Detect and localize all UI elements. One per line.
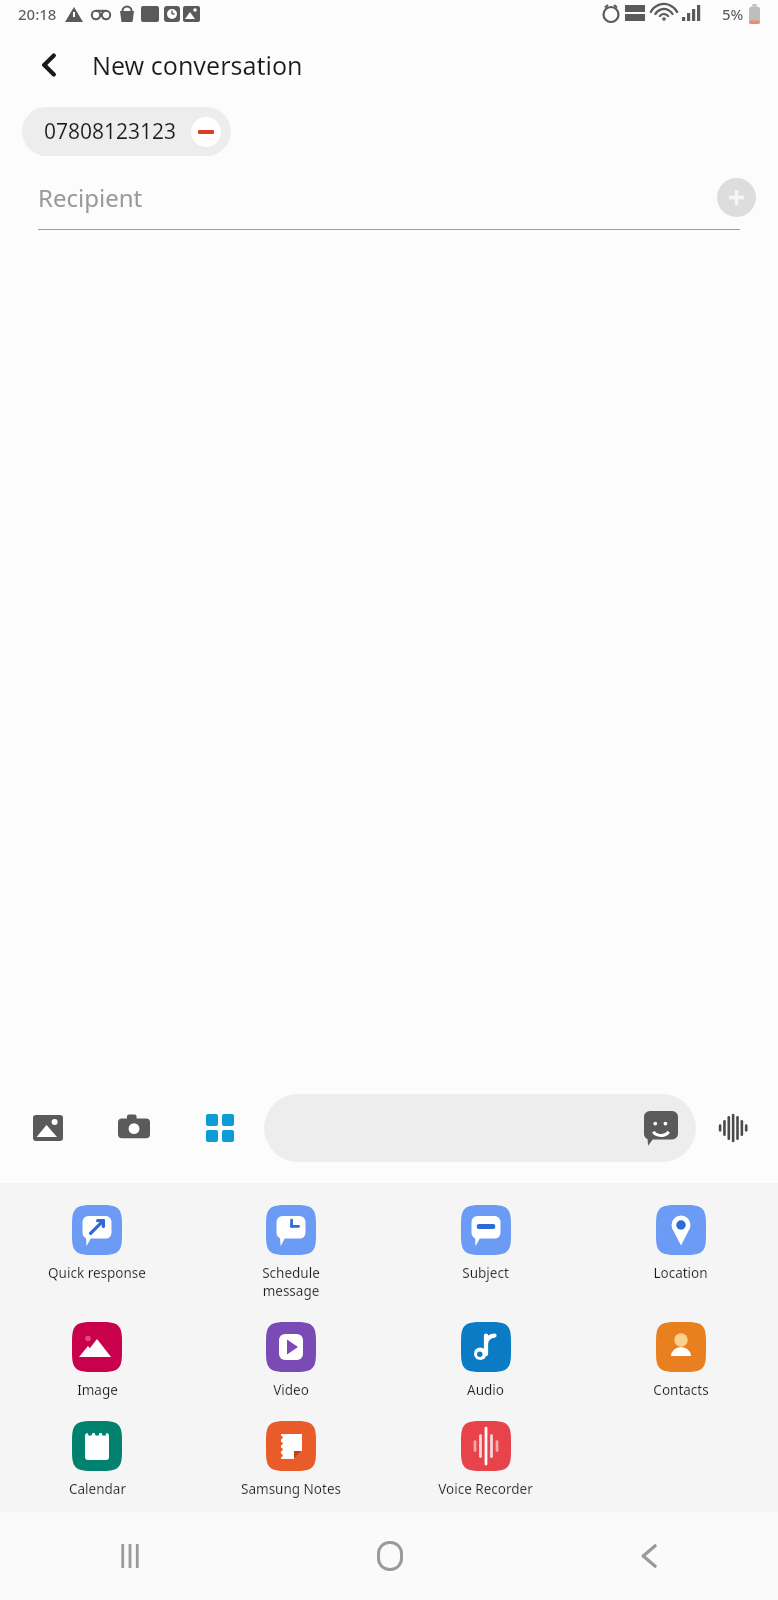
staticText: Samsung Notes <box>241 1480 341 1498</box>
staticText: Location <box>653 1264 708 1282</box>
staticText: Voice Recorder <box>438 1480 533 1498</box>
button[interactable] <box>264 1094 696 1162</box>
button[interactable]: Gallery <box>20 1100 76 1156</box>
button[interactable]: Audio <box>388 1312 583 1399</box>
button[interactable]: Location <box>583 1195 778 1282</box>
button[interactable]: Samsung Notes <box>194 1411 388 1498</box>
staticText: Schedule message <box>262 1264 320 1300</box>
staticText: Video <box>273 1381 309 1399</box>
staticText: Image <box>77 1381 118 1399</box>
button[interactable]: Recents <box>0 1512 260 1600</box>
button[interactable]: Attachments <box>192 1100 248 1156</box>
staticText: Recipient <box>38 181 143 214</box>
button[interactable]: 07808123123 <box>22 107 231 156</box>
staticText: 07808123123 <box>44 117 177 146</box>
button[interactable]: Contacts <box>583 1312 778 1399</box>
button[interactable]: Video <box>194 1312 388 1399</box>
staticText: New conversation <box>92 48 303 82</box>
button[interactable]: Back <box>519 1512 778 1600</box>
button[interactable]: Home <box>260 1512 519 1600</box>
button[interactable]: Voice input <box>708 1103 758 1153</box>
staticText: Audio <box>467 1381 504 1399</box>
staticText: Quick response <box>48 1264 146 1282</box>
staticText: 20:18 <box>18 4 57 24</box>
button[interactable]: Calendar <box>0 1411 194 1498</box>
button[interactable]: Add recipient <box>717 178 756 217</box>
button[interactable]: Quick response <box>0 1195 194 1282</box>
button[interactable]: Image <box>0 1312 194 1399</box>
staticText: Subject <box>462 1264 509 1282</box>
staticText: Contacts <box>653 1381 709 1399</box>
staticText: Calendar <box>69 1480 126 1498</box>
button[interactable]: Voice Recorder <box>388 1411 583 1498</box>
button[interactable]: Subject <box>388 1195 583 1282</box>
button[interactable]: Schedule message <box>194 1195 388 1300</box>
button[interactable]: Back <box>22 37 78 93</box>
staticText: 5% <box>722 4 744 24</box>
button[interactable]: Camera <box>106 1100 162 1156</box>
